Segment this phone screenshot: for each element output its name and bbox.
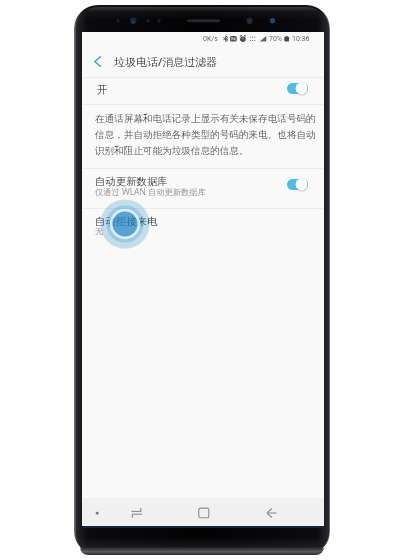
staticText: 10:36 bbox=[292, 35, 310, 43]
button[interactable]: Back bbox=[250, 498, 320, 526]
staticText: 无 bbox=[95, 226, 104, 236]
staticText: 自动拒接来电 bbox=[95, 215, 158, 228]
staticText: 仅通过 WLAN 自动更新数据库 bbox=[95, 186, 206, 197]
staticText: 开 bbox=[97, 83, 108, 96]
button[interactable]: Hide navigation bar bbox=[89, 498, 109, 526]
button[interactable]: Recent apps bbox=[109, 498, 180, 526]
staticText: 垃圾电话/消息过滤器 bbox=[114, 54, 218, 69]
staticText: 0K/s bbox=[203, 35, 218, 43]
button[interactable]: 开 bbox=[82, 78, 324, 104]
staticText: 自动更新数据库 bbox=[95, 175, 168, 188]
staticText: 在通话屏幕和电话记录上显示有关未保存电话号码的信息，并自动拒绝各种类型的号码的来… bbox=[95, 113, 316, 156]
button[interactable]: 自动更新数据库 bbox=[82, 169, 324, 208]
button[interactable]: 自动拒接来电 bbox=[82, 209, 324, 248]
button[interactable]: Back bbox=[89, 53, 106, 70]
staticText: 70% bbox=[269, 35, 282, 43]
button[interactable]: Home bbox=[180, 498, 250, 526]
